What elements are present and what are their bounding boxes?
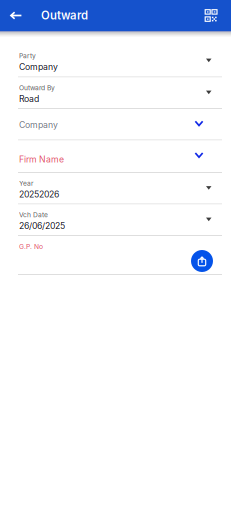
button[interactable]: Back: [0, 0, 27, 31]
staticText: Vch Date: [19, 211, 48, 219]
staticText: 20252026: [19, 189, 59, 200]
button[interactable]: Vch Date: [0, 204, 231, 236]
button[interactable]: Outward By: [0, 77, 231, 109]
staticText: G.P. No: [19, 242, 43, 251]
staticText: Road: [19, 94, 39, 104]
button[interactable]: Company: [0, 109, 231, 140]
button[interactable]: Scan QR code: [198, 0, 231, 31]
staticText: Firm Name: [19, 154, 64, 164]
staticText: Outward By: [19, 84, 55, 92]
staticText: Company: [19, 120, 58, 130]
button[interactable]: Firm Name: [0, 140, 231, 173]
staticText: Year: [19, 179, 34, 187]
button[interactable]: Party: [0, 45, 231, 77]
button[interactable]: Year: [0, 173, 231, 204]
button[interactable]: Save: [191, 250, 213, 272]
staticText: 26/06/2025: [19, 221, 65, 231]
staticText: Company: [19, 62, 58, 72]
staticText: Outward: [41, 9, 88, 22]
staticText: Party: [19, 52, 36, 60]
